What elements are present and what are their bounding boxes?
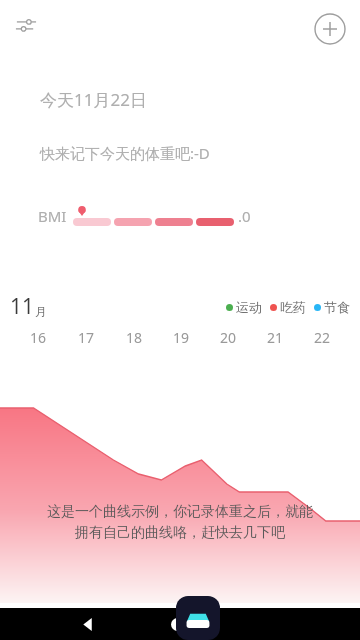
staticText: 20 [220,328,237,347]
staticText: 运动 [236,299,262,315]
staticText: 吃药 [280,299,306,315]
button[interactable]: Settings [10,10,42,42]
staticText: 拥有自己的曲线咯，赶快去几下吧 [75,524,285,542]
button[interactable]: 20 [205,328,252,347]
button[interactable]: 吃药 [270,299,306,315]
button[interactable]: 17 [62,328,110,347]
staticText: 16 [30,328,47,347]
button[interactable]: 16 [14,328,62,347]
staticText: .0 [238,206,251,226]
staticText: 11 [10,292,35,321]
staticText: 18 [126,328,143,347]
button[interactable]: 21 [252,328,299,347]
button[interactable]: 18 [110,328,158,347]
staticText: BMI [38,206,67,226]
button[interactable]: 运动 [226,299,262,315]
staticText: 节食 [324,299,350,315]
button[interactable]: Home [171,618,184,631]
button[interactable]: Add record [314,13,346,45]
staticText: 月 [35,304,47,319]
staticText: 17 [78,328,95,347]
staticText: 19 [173,328,190,347]
staticText: 22 [314,328,331,347]
staticText: 21 [267,328,284,347]
staticText: 这是一个曲线示例，你记录体重之后，就能 [47,503,313,521]
staticText: 今天11月22日 [40,88,147,111]
button[interactable]: 节食 [314,299,350,315]
staticText: 快来记下今天的体重吧:-D [40,143,210,163]
button[interactable]: Back [82,618,95,631]
button[interactable]: 22 [299,328,346,347]
button[interactable]: 19 [158,328,205,347]
